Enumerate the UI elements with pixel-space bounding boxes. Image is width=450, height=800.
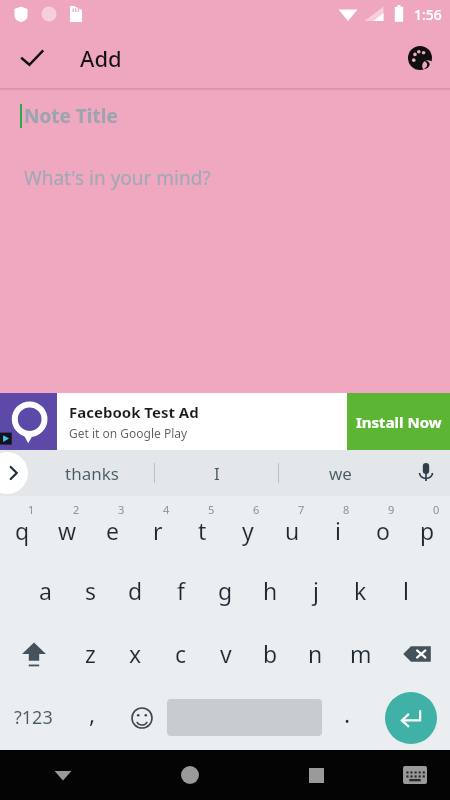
button[interactable]: s: [68, 559, 113, 622]
staticText: z: [85, 638, 96, 669]
button[interactable]: j: [293, 559, 338, 622]
button[interactable]: ?123: [0, 685, 67, 750]
staticText: 4: [163, 502, 170, 517]
staticText: b: [263, 638, 278, 669]
staticText: Add: [80, 43, 122, 73]
button[interactable]: 7: [270, 496, 315, 559]
button[interactable]: Hide keyboard: [0, 750, 126, 800]
staticText: .: [344, 698, 351, 729]
button[interactable]: 6: [225, 496, 270, 559]
staticText: x: [129, 638, 142, 669]
staticText: j: [313, 575, 319, 606]
button[interactable]: thanks: [30, 450, 154, 496]
button[interactable]: we: [279, 450, 402, 496]
staticText: a: [39, 575, 52, 606]
button[interactable]: 3: [90, 496, 135, 559]
button[interactable]: Shift: [0, 622, 67, 685]
staticText: I: [214, 462, 220, 485]
button[interactable]: 4: [135, 496, 180, 559]
button[interactable]: f: [158, 559, 203, 622]
staticText: 9: [388, 502, 395, 517]
button[interactable]: 5: [180, 496, 225, 559]
staticText: 6: [253, 502, 260, 517]
staticText: i: [335, 515, 341, 546]
button[interactable]: Voice input: [402, 450, 450, 496]
staticText: t: [198, 515, 207, 546]
staticText: 5: [208, 502, 215, 517]
button[interactable]: What's in your mind?: [24, 165, 450, 191]
button[interactable]: Install Now: [347, 393, 450, 450]
button[interactable]: x: [113, 622, 158, 685]
button[interactable]: Facebook Test Ad: [0, 393, 450, 450]
staticText: h: [263, 575, 278, 606]
staticText: 1: [28, 502, 35, 517]
staticText: Install Now: [356, 412, 442, 432]
staticText: f: [177, 575, 185, 606]
button[interactable]: k: [338, 559, 383, 622]
button[interactable]: Enter: [372, 685, 450, 750]
staticText: m: [350, 638, 372, 669]
staticText: e: [106, 515, 119, 546]
button[interactable]: Change note colour: [396, 34, 444, 82]
staticText: r: [153, 515, 163, 546]
staticText: 3: [118, 502, 125, 517]
button[interactable]: v: [203, 622, 248, 685]
button[interactable]: Emoji: [117, 685, 167, 750]
staticText: q: [15, 515, 30, 546]
staticText: 2: [73, 502, 80, 517]
staticText: p: [420, 515, 435, 546]
button[interactable]: ,: [67, 685, 117, 750]
staticText: d: [128, 575, 143, 606]
button[interactable]: Backspace: [383, 622, 450, 685]
button[interactable]: g: [203, 559, 248, 622]
staticText: Facebook Test Ad: [69, 402, 199, 422]
button[interactable]: c: [158, 622, 203, 685]
staticText: o: [376, 515, 390, 546]
button[interactable]: I: [155, 450, 278, 496]
staticText: v: [220, 638, 232, 669]
staticText: 0: [433, 502, 440, 517]
button[interactable]: 8: [315, 496, 360, 559]
button[interactable]: Switch keyboard: [380, 750, 450, 800]
button[interactable]: 2: [45, 496, 90, 559]
staticText: 8: [343, 502, 350, 517]
staticText: c: [175, 638, 187, 669]
staticText: ,: [89, 698, 96, 729]
staticText: g: [218, 575, 233, 606]
staticText: 1:56: [414, 5, 442, 24]
button[interactable]: b: [248, 622, 293, 685]
staticText: thanks: [65, 462, 119, 485]
staticText: s: [85, 575, 97, 606]
staticText: y: [242, 515, 254, 546]
staticText: u: [285, 515, 300, 546]
staticText: k: [354, 575, 367, 606]
staticText: l: [403, 575, 409, 606]
button[interactable]: Note Title: [20, 103, 450, 129]
button[interactable]: a: [22, 559, 68, 622]
button[interactable]: Recent apps: [253, 750, 380, 800]
button[interactable]: 0: [405, 496, 450, 559]
button[interactable]: Save note: [8, 34, 56, 82]
button[interactable]: .: [322, 685, 372, 750]
staticText: we: [329, 462, 352, 485]
staticText: w: [58, 515, 77, 546]
button[interactable]: 1: [0, 496, 45, 559]
button[interactable]: 9: [360, 496, 405, 559]
button[interactable]: Home: [126, 750, 253, 800]
button[interactable]: z: [67, 622, 113, 685]
button[interactable]: h: [248, 559, 293, 622]
button[interactable]: n: [293, 622, 338, 685]
staticText: n: [308, 638, 323, 669]
staticText: ?123: [14, 705, 53, 730]
staticText: 7: [298, 502, 305, 517]
staticText: Get it on Google Play: [69, 425, 188, 441]
staticText: Note Title: [24, 103, 118, 129]
button[interactable]: d: [113, 559, 158, 622]
button[interactable]: m: [338, 622, 383, 685]
button[interactable]: l: [383, 559, 428, 622]
button[interactable]: Expand suggestions: [0, 452, 28, 494]
